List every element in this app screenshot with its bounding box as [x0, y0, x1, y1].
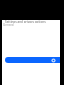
staticText: Settings and privacy options: [5, 20, 46, 23]
button[interactable]: Settings: [5, 57, 60, 63]
staticText: General: [3, 23, 15, 26]
button[interactable]: Settings: [51, 58, 56, 63]
button[interactable]: Settings and privacy options: [5, 20, 60, 23]
